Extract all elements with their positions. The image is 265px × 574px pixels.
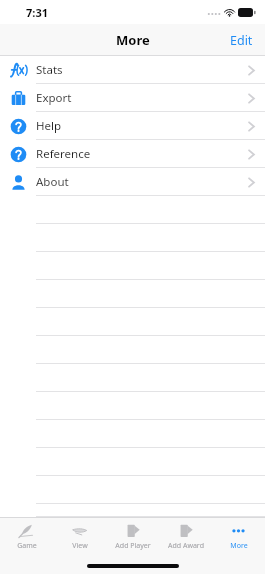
button[interactable]: About bbox=[0, 168, 265, 196]
staticText: More bbox=[116, 31, 150, 49]
button[interactable]: Stats bbox=[0, 56, 265, 84]
button[interactable]: Game bbox=[0, 518, 53, 556]
button[interactable]: Add Player bbox=[106, 518, 159, 556]
staticText: Reference bbox=[36, 146, 91, 162]
button[interactable]: Reference bbox=[0, 140, 265, 168]
staticText: Export bbox=[36, 90, 72, 106]
button[interactable]: Add Award bbox=[159, 518, 212, 556]
staticText: View bbox=[72, 541, 88, 551]
staticText: Add Player bbox=[115, 541, 151, 551]
staticText: Game bbox=[17, 541, 37, 551]
staticText: Edit bbox=[230, 32, 253, 49]
staticText: 7:31 bbox=[26, 5, 48, 20]
staticText: Add Award bbox=[168, 541, 204, 551]
staticText: About bbox=[36, 174, 69, 190]
staticText: Stats bbox=[36, 62, 63, 78]
button[interactable]: Help bbox=[0, 112, 265, 140]
button[interactable]: More bbox=[212, 518, 265, 556]
button[interactable]: View bbox=[53, 518, 106, 556]
staticText: Help bbox=[36, 118, 62, 134]
button[interactable]: Export bbox=[0, 84, 265, 112]
button[interactable]: Edit bbox=[218, 26, 265, 55]
staticText: More bbox=[230, 541, 248, 551]
